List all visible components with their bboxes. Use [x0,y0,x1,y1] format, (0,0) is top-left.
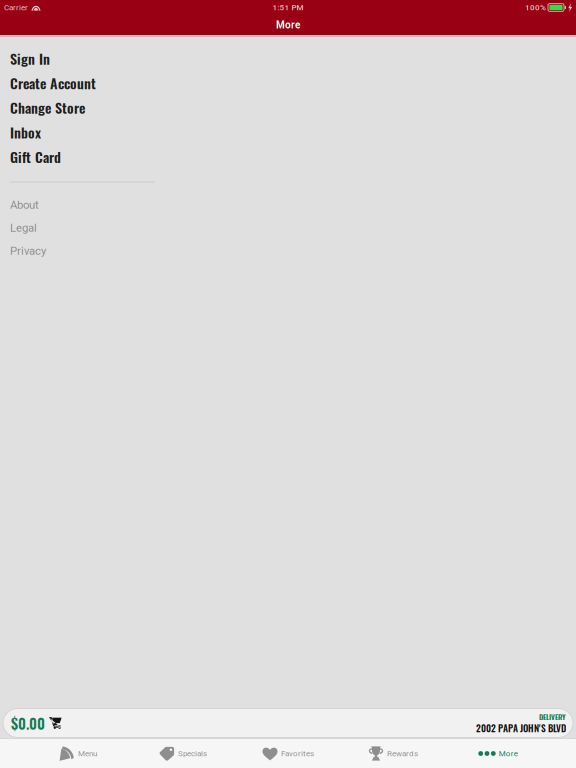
staticText: Change Store [10,97,85,118]
staticText: About [10,198,39,212]
staticText: Gift Card [10,146,61,167]
staticText: Legal [10,221,37,235]
button[interactable]: About [0,193,576,216]
button[interactable]: $0.00 [3,708,68,737]
staticText: 100% [525,3,546,12]
button[interactable]: Favorites [235,738,340,768]
button[interactable]: Inbox [0,120,576,144]
button[interactable]: Legal [0,216,576,239]
staticText: Inbox [10,122,41,142]
staticText: Menu [78,749,97,758]
button[interactable]: Privacy [0,239,576,262]
staticText: Rewards [387,749,418,758]
staticText: DELIVERY [539,712,566,722]
staticText: Carrier [4,3,28,12]
staticText: Create Account [10,72,96,93]
staticText: Favorites [281,749,314,758]
staticText: More [499,749,518,758]
button[interactable]: More [445,738,550,768]
button[interactable]: Menu [25,738,130,768]
staticText: Privacy [10,244,46,258]
button[interactable]: Specials [130,738,235,768]
button[interactable]: Create Account [0,71,576,95]
staticText: Sign In [10,48,50,69]
staticText: 1:51 PM [272,3,303,12]
staticText: 2002 PAPA JOHN'S BLVD [476,721,566,735]
button[interactable]: Sign In [0,46,576,71]
staticText: More [276,19,300,31]
button[interactable]: Gift Card [0,144,576,169]
button[interactable]: Rewards [340,738,445,768]
button[interactable]: Change Store [0,95,576,120]
button[interactable]: DELIVERY [470,708,573,737]
staticText: Specials [178,749,207,758]
staticText: $0.00 [11,712,45,734]
